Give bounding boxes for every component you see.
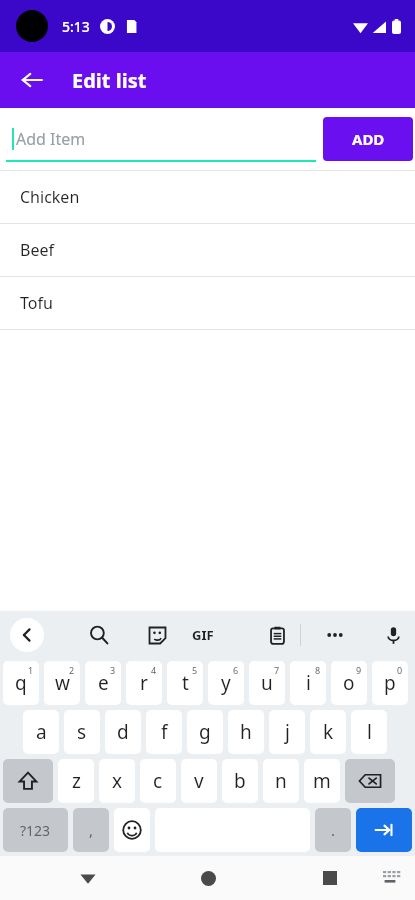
button[interactable]: h bbox=[228, 710, 264, 754]
button[interactable]: Toolbar action bbox=[318, 618, 352, 652]
button[interactable]: Tofu bbox=[0, 277, 415, 329]
staticText: i bbox=[306, 670, 311, 696]
button[interactable]: Symbols bbox=[3, 808, 68, 852]
button[interactable]: s bbox=[64, 710, 100, 754]
button[interactable]: Toolbar action bbox=[260, 618, 294, 652]
button[interactable]: Back bbox=[8, 56, 56, 104]
staticText: 5:13 bbox=[62, 17, 90, 36]
staticText: 4 bbox=[151, 664, 157, 676]
button[interactable]: Enter bbox=[356, 808, 412, 852]
button[interactable]: ADD bbox=[323, 117, 413, 161]
staticText: 0 bbox=[397, 664, 403, 676]
button[interactable]: q bbox=[3, 661, 39, 705]
button[interactable]: r bbox=[126, 661, 162, 705]
button[interactable]: Recents bbox=[310, 858, 350, 898]
button[interactable]: Home bbox=[188, 858, 228, 898]
button[interactable]: n bbox=[263, 759, 299, 803]
button[interactable]: b bbox=[222, 759, 258, 803]
staticText: j bbox=[285, 719, 290, 745]
staticText: Add Item bbox=[16, 128, 86, 150]
staticText: g bbox=[199, 719, 211, 745]
staticText: m bbox=[313, 768, 331, 794]
button[interactable]: Close toolbar bbox=[10, 618, 44, 652]
staticText: 5 bbox=[192, 664, 198, 676]
button[interactable]: Toolbar action bbox=[140, 618, 174, 652]
staticText: 6 bbox=[233, 664, 239, 676]
staticText: . bbox=[331, 820, 336, 840]
button[interactable]: l bbox=[351, 710, 387, 754]
button[interactable]: u bbox=[249, 661, 285, 705]
staticText: GIF bbox=[192, 626, 214, 644]
staticText: 9 bbox=[356, 664, 362, 676]
button[interactable]: w bbox=[44, 661, 80, 705]
button[interactable]: Period bbox=[315, 808, 351, 852]
staticText: v bbox=[194, 768, 204, 794]
button[interactable]: m bbox=[304, 759, 340, 803]
staticText: 1 bbox=[28, 664, 34, 676]
staticText: l bbox=[367, 719, 372, 745]
button[interactable]: i bbox=[290, 661, 326, 705]
button[interactable]: Chicken bbox=[0, 171, 415, 223]
button[interactable]: Back bbox=[68, 858, 108, 898]
staticText: , bbox=[89, 820, 94, 840]
staticText: z bbox=[72, 768, 81, 794]
staticText: 3 bbox=[110, 664, 116, 676]
staticText: r bbox=[140, 670, 148, 696]
button[interactable]: v bbox=[181, 759, 217, 803]
button[interactable]: Switch keyboard bbox=[373, 861, 407, 895]
button[interactable]: o bbox=[331, 661, 367, 705]
staticText: b bbox=[234, 768, 246, 794]
staticText: y bbox=[221, 670, 231, 696]
button[interactable]: d bbox=[105, 710, 141, 754]
button[interactable]: Comma bbox=[73, 808, 109, 852]
staticText: p bbox=[384, 670, 396, 696]
staticText: c bbox=[153, 768, 163, 794]
staticText: ?123 bbox=[20, 821, 51, 840]
button[interactable]: t bbox=[167, 661, 203, 705]
staticText: a bbox=[36, 719, 47, 745]
button[interactable]: k bbox=[310, 710, 346, 754]
staticText: k bbox=[323, 719, 334, 745]
staticText: Beef bbox=[20, 239, 54, 261]
button[interactable]: c bbox=[140, 759, 176, 803]
button[interactable]: Backspace bbox=[345, 759, 395, 803]
staticText: ADD bbox=[352, 129, 385, 149]
staticText: h bbox=[240, 719, 252, 745]
button[interactable]: j bbox=[269, 710, 305, 754]
staticText: o bbox=[343, 670, 355, 696]
staticText: t bbox=[182, 670, 189, 696]
button[interactable]: Emoji bbox=[114, 808, 150, 852]
staticText: d bbox=[117, 719, 129, 745]
staticText: s bbox=[77, 719, 87, 745]
staticText: n bbox=[275, 768, 287, 794]
staticText: 8 bbox=[315, 664, 321, 676]
staticText: Tofu bbox=[20, 292, 53, 314]
button[interactable]: z bbox=[58, 759, 94, 803]
staticText: f bbox=[161, 719, 168, 745]
staticText: q bbox=[15, 670, 27, 696]
button[interactable]: Beef bbox=[0, 224, 415, 276]
staticText: w bbox=[55, 670, 70, 696]
button[interactable]: GIF bbox=[186, 618, 220, 652]
button[interactable]: Toolbar action bbox=[82, 618, 116, 652]
staticText: 7 bbox=[274, 664, 280, 676]
button[interactable]: e bbox=[85, 661, 121, 705]
button[interactable]: y bbox=[208, 661, 244, 705]
button[interactable]: Shift bbox=[3, 759, 53, 803]
button[interactable]: f bbox=[146, 710, 182, 754]
staticText: Chicken bbox=[20, 186, 80, 208]
button[interactable]: Toolbar action bbox=[376, 618, 410, 652]
staticText: 2 bbox=[69, 664, 75, 676]
button[interactable]: a bbox=[23, 710, 59, 754]
button[interactable]: p bbox=[372, 661, 408, 705]
button[interactable]: x bbox=[99, 759, 135, 803]
staticText: Edit list bbox=[72, 67, 147, 94]
staticText: u bbox=[261, 670, 273, 696]
staticText: e bbox=[98, 670, 109, 696]
staticText: x bbox=[112, 768, 123, 794]
button[interactable]: g bbox=[187, 710, 223, 754]
